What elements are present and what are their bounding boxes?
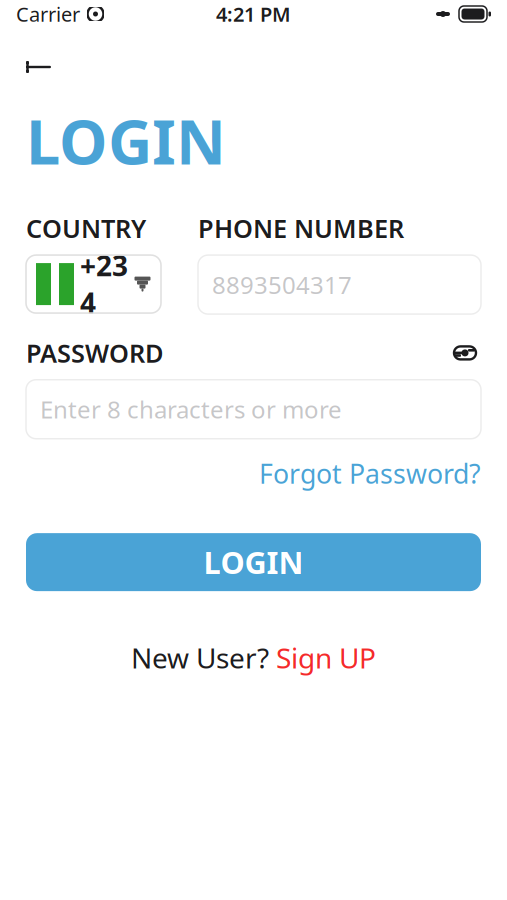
staticText: Forgot Password? — [259, 456, 481, 491]
staticText: COUNTRY — [26, 211, 146, 245]
staticText: New User? — [131, 639, 276, 676]
staticText: 4:21 PM — [216, 1, 291, 27]
button[interactable]: LOGIN — [26, 533, 481, 591]
staticText: Enter 8 characters or more — [40, 393, 342, 425]
staticText: Carrier — [16, 1, 80, 27]
staticText: PHONE NUMBER — [198, 211, 404, 245]
staticText: +234 — [80, 247, 128, 321]
staticText: LOGIN — [203, 542, 303, 582]
button[interactable]: 8893504317 — [198, 255, 481, 314]
staticText: PASSWORD — [26, 336, 164, 370]
button[interactable]: Select country code — [26, 255, 161, 313]
staticText: Sign UP — [276, 639, 376, 676]
button[interactable]: Show password — [449, 339, 481, 367]
staticText: LOGIN — [26, 100, 226, 181]
button[interactable]: Back — [16, 48, 62, 86]
staticText: 8893504317 — [212, 269, 352, 301]
button[interactable]: Enter 8 characters or more — [26, 380, 481, 439]
button[interactable]: Sign UP — [276, 639, 376, 676]
button[interactable]: Forgot Password? — [259, 456, 481, 491]
